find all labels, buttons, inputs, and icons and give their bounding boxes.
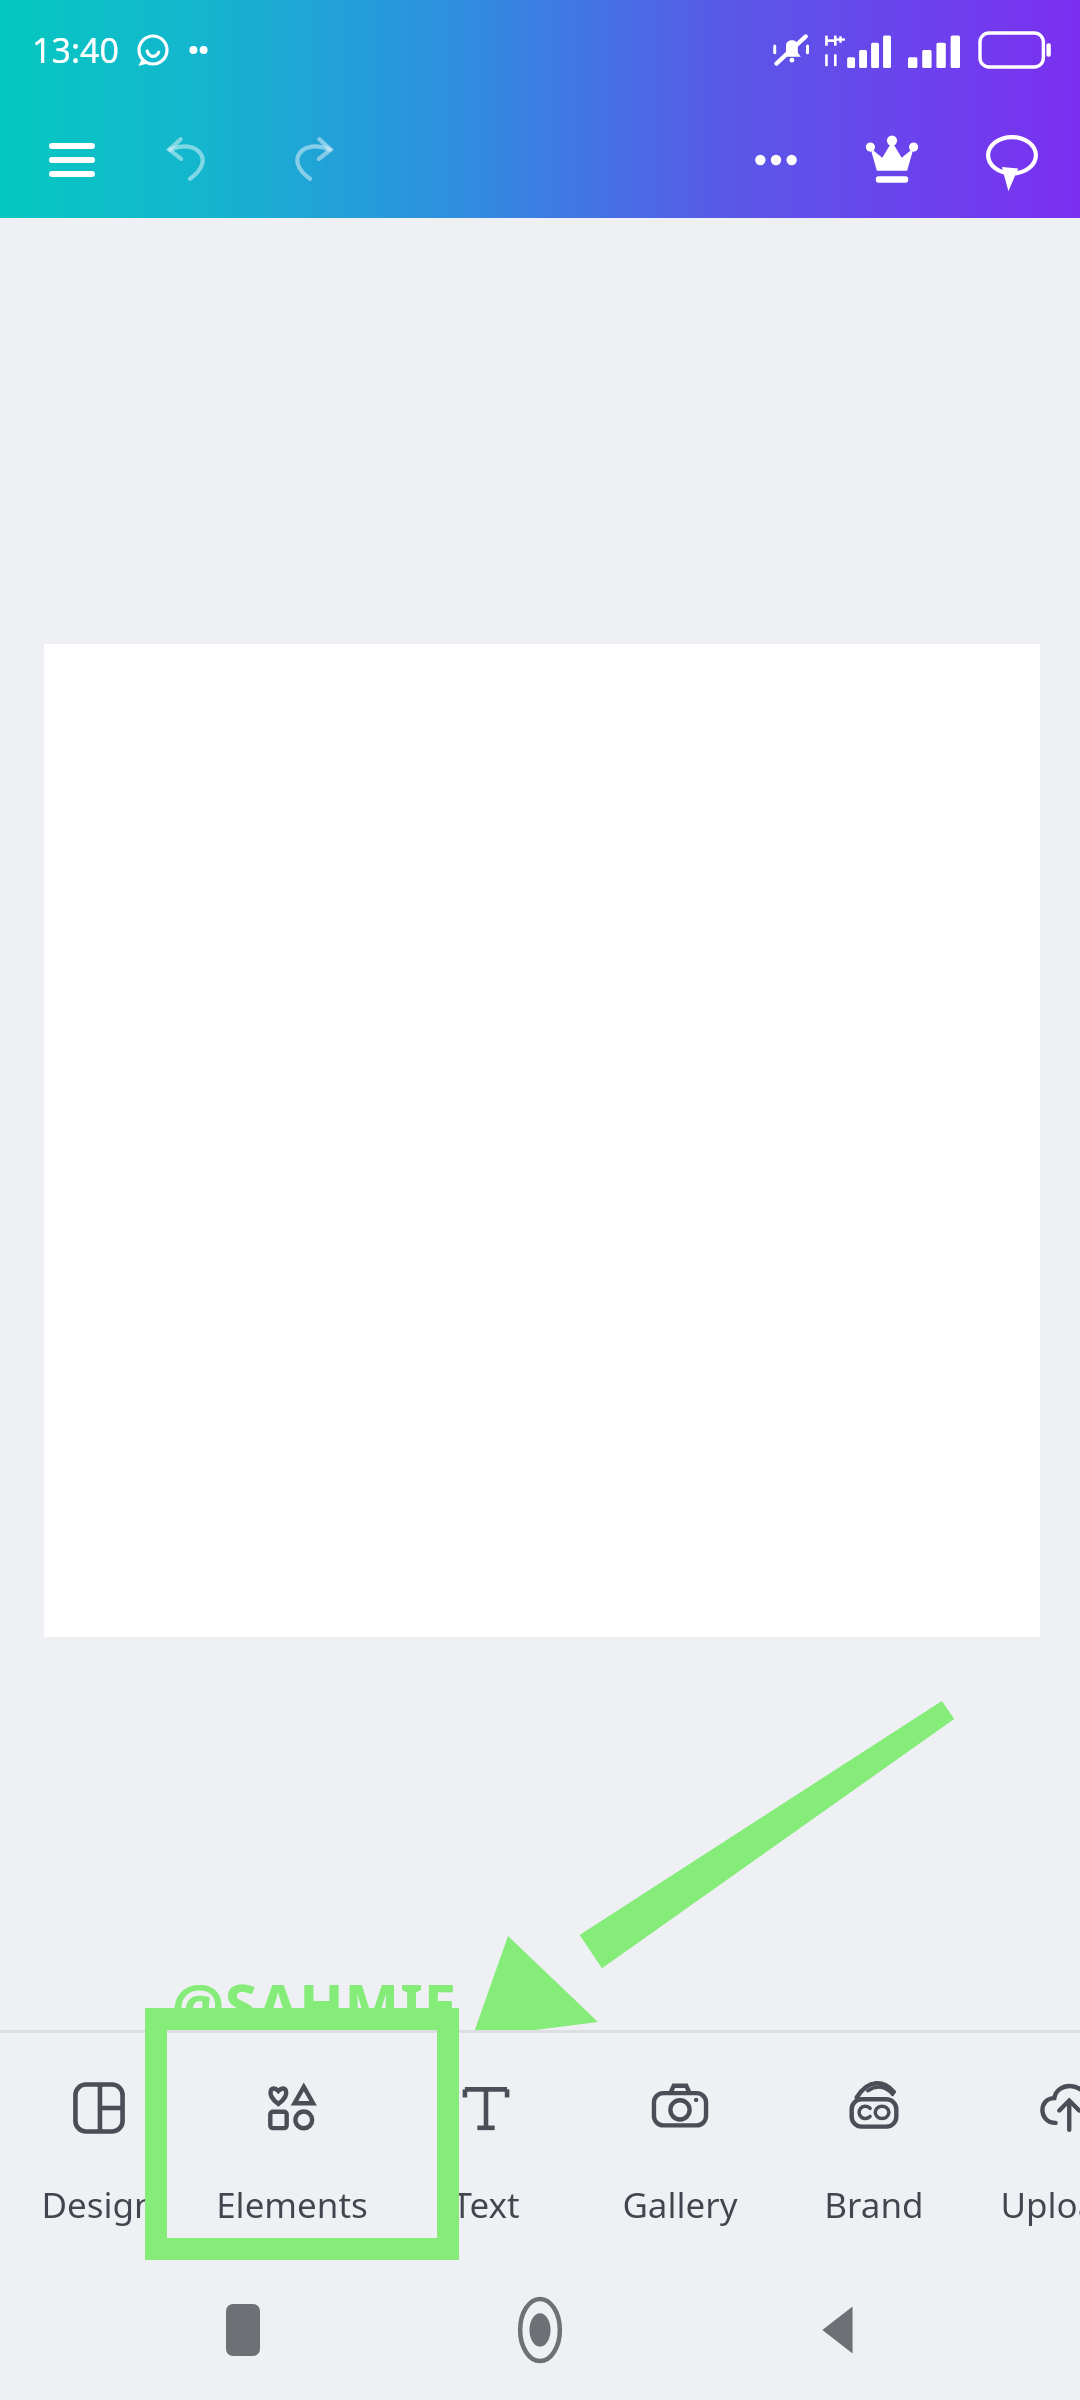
button[interactable]: Brand	[777, 2033, 971, 2260]
staticText: @SAHMIE	[172, 1964, 458, 2043]
button[interactable]: Uploads	[971, 2033, 1080, 2260]
button[interactable]: Back	[783, 2275, 893, 2385]
button[interactable]: Canva Pro	[850, 118, 934, 202]
button[interactable]: Elements	[195, 2033, 389, 2260]
staticText: Elements	[216, 2181, 368, 2229]
staticText: Brand	[824, 2181, 924, 2229]
button[interactable]: Home	[485, 2275, 595, 2385]
staticText: Gallery	[622, 2181, 738, 2229]
button[interactable]: Redo	[272, 122, 348, 198]
button[interactable]: Design	[1, 2033, 195, 2260]
button[interactable]: Undo	[152, 122, 228, 198]
staticText: Text	[452, 2181, 520, 2229]
staticText: Uploads	[1000, 2181, 1080, 2229]
button[interactable]: Comments	[970, 118, 1054, 202]
staticText: Design	[41, 2181, 156, 2229]
button[interactable]: Recents	[188, 2275, 298, 2385]
staticText: 13:40	[32, 27, 119, 73]
button[interactable]: More options	[738, 122, 814, 198]
button[interactable]: Text	[389, 2033, 583, 2260]
button[interactable]: Gallery	[583, 2033, 777, 2260]
button[interactable]: Menu	[34, 122, 110, 198]
